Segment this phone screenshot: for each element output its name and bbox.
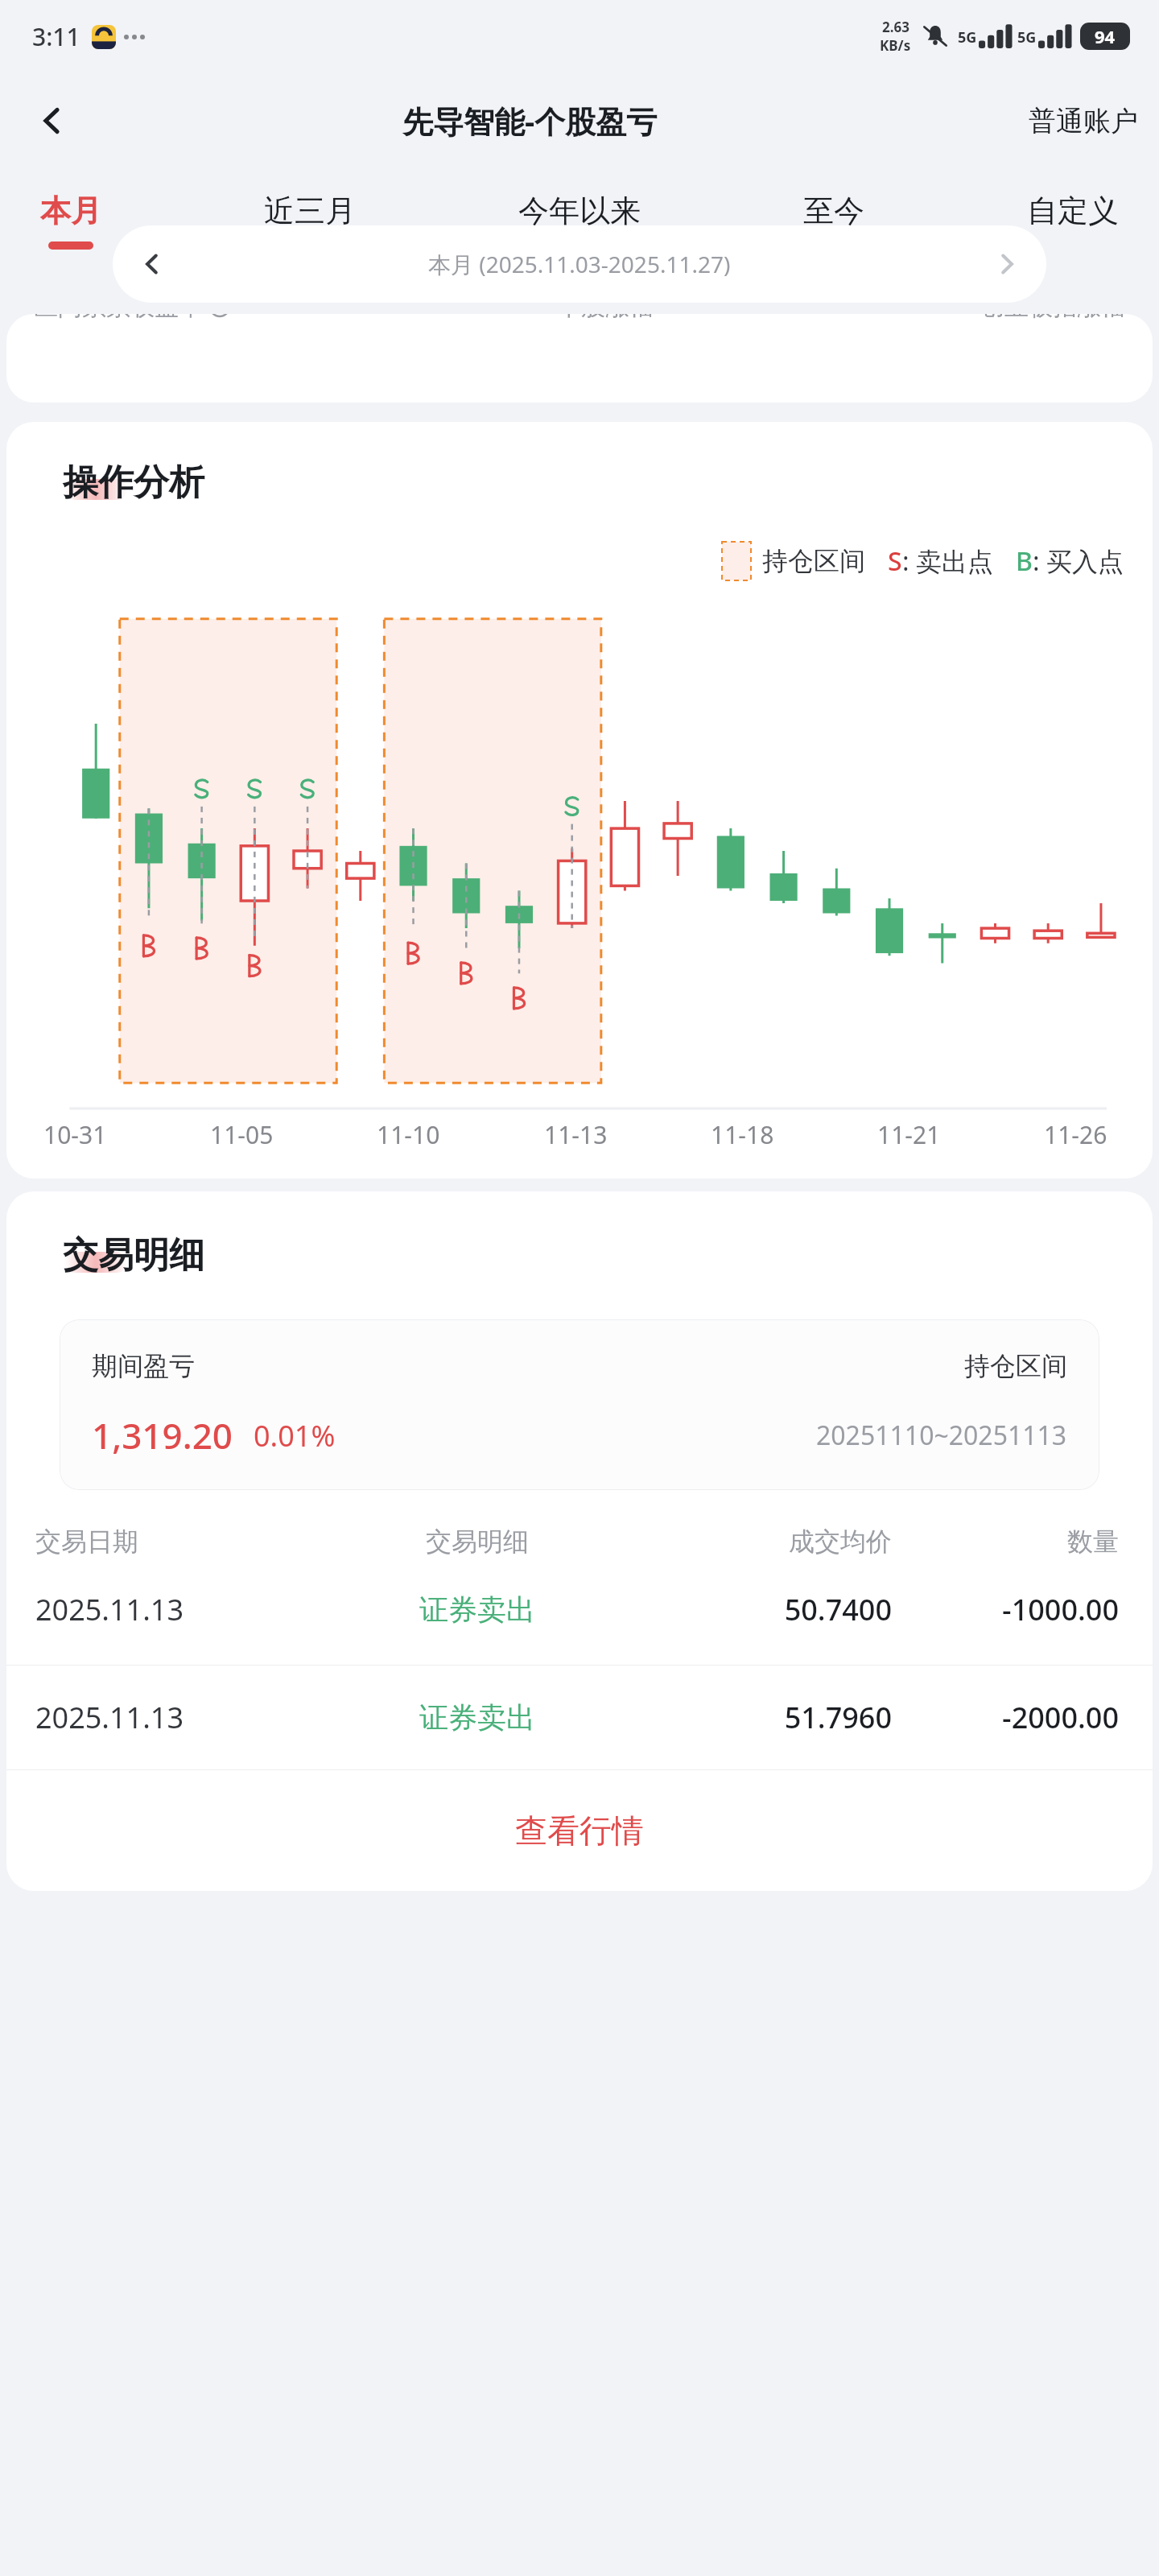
staticText: 51.7960 (625, 1698, 892, 1737)
staticText: 个股涨幅 (557, 314, 654, 322)
button[interactable]: 今年以来 (518, 192, 641, 242)
button[interactable]: 普通账户 (1029, 104, 1138, 138)
staticText: 20251110~20251113 (816, 1418, 1067, 1453)
button[interactable]: 期间盈亏 (60, 1319, 1099, 1490)
staticText: : 卖出点 (902, 543, 993, 579)
other: Next (995, 252, 1019, 276)
staticText: 11-26 (1044, 1118, 1107, 1151)
staticText: 成交均价 (625, 1525, 892, 1558)
staticText: 自定义 (1027, 192, 1119, 230)
button[interactable]: Previous (113, 225, 1046, 303)
staticText: 今年以来 (518, 192, 641, 230)
staticText: 交易明细 (330, 1525, 625, 1558)
staticText: 近三月 (264, 192, 356, 230)
staticText: 持仓区间 (762, 545, 865, 577)
staticText: 11-10 (377, 1118, 440, 1151)
staticText: 操作分析 (63, 460, 204, 505)
staticText: 期间盈亏 (92, 1350, 195, 1382)
staticText: -1000.00 (892, 1590, 1119, 1629)
staticText: -2000.00 (892, 1698, 1119, 1737)
button[interactable]: 自定义 (1027, 192, 1119, 242)
staticText: 持仓区间 (964, 1350, 1067, 1382)
staticText: 94 (1095, 24, 1116, 48)
staticText: 1,319.20 (92, 1411, 233, 1459)
staticText: 10-31 (43, 1118, 107, 1151)
staticText: 证券卖出 (330, 1699, 625, 1736)
staticText: B (1016, 543, 1033, 579)
staticText: 交易日期 (35, 1525, 330, 1558)
staticText: 0.01% (254, 1416, 336, 1455)
staticText: KB/s (880, 36, 911, 55)
staticText: 证券卖出 (330, 1591, 625, 1628)
staticText: S (888, 543, 902, 579)
staticText: 11-13 (544, 1118, 608, 1151)
staticText: 2025.11.13 (35, 1698, 330, 1737)
staticText: 11-18 (711, 1118, 774, 1151)
staticText: 交易明细 (63, 1233, 204, 1278)
button[interactable]: 2025.11.13 (35, 1590, 1119, 1629)
button[interactable]: 查看行情 (6, 1770, 1153, 1891)
button[interactable]: Back (24, 93, 80, 149)
staticText: 11-21 (877, 1118, 941, 1151)
staticText: 5G (1017, 27, 1037, 47)
button[interactable]: 至今 (803, 192, 864, 242)
staticText: 查看行情 (515, 1810, 644, 1851)
staticText: 2.63 (882, 18, 909, 36)
staticText: 3:11 (32, 20, 80, 53)
staticText: 先导智能-个股盈亏 (402, 100, 658, 142)
button[interactable]: 近三月 (264, 192, 356, 242)
staticText: 普通账户 (1029, 104, 1138, 138)
staticText: 至今 (803, 192, 864, 230)
staticText: 本月 (2025.11.03-2025.11.27) (428, 249, 731, 279)
staticText: 50.7400 (625, 1590, 892, 1629)
staticText: 本月 (40, 192, 101, 230)
staticText: 11-05 (210, 1118, 274, 1151)
button[interactable]: 2025.11.13 (35, 1698, 1119, 1737)
other: Previous (140, 252, 164, 276)
staticText: 创业板指涨幅 (980, 314, 1125, 322)
staticText: 5G (958, 27, 977, 47)
staticText: 2025.11.13 (35, 1590, 330, 1629)
button[interactable]: 本月 (40, 192, 101, 250)
staticText: 区间累累收益率 (34, 314, 203, 322)
staticText: : 买入点 (1033, 543, 1124, 579)
staticText: 数量 (892, 1525, 1119, 1558)
